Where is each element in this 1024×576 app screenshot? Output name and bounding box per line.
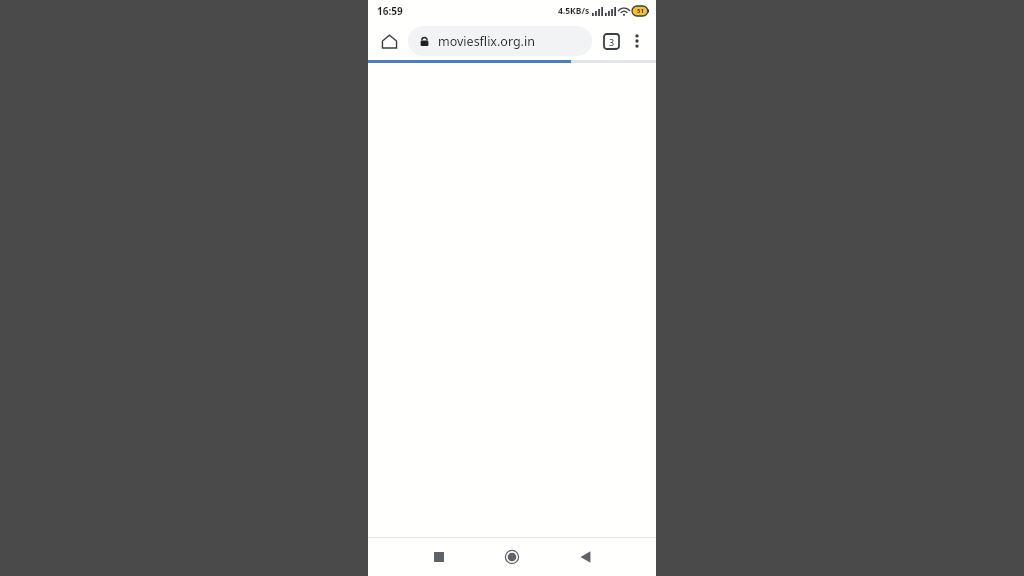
- staticText: moviesflix.org.in: [438, 33, 535, 50]
- button[interactable]: Recent apps: [422, 540, 456, 574]
- button[interactable]: More options: [624, 28, 650, 54]
- button[interactable]: Tabs, 3 open: [598, 28, 624, 54]
- staticText: 51: [637, 7, 644, 15]
- button[interactable]: Home: [495, 540, 529, 574]
- staticText: 16:59: [377, 4, 403, 18]
- staticText: 3: [609, 36, 615, 48]
- staticText: 4.5KB/s: [558, 5, 590, 17]
- button[interactable]: moviesflix.org.in: [408, 26, 592, 56]
- button[interactable]: Back: [568, 540, 602, 574]
- button[interactable]: Home: [376, 28, 402, 54]
